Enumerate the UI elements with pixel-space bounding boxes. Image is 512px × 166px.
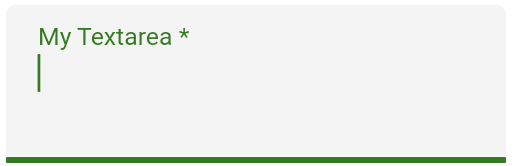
button[interactable]: My Textarea, required text field	[6, 5, 506, 163]
staticText: My Textarea *	[38, 22, 190, 51]
